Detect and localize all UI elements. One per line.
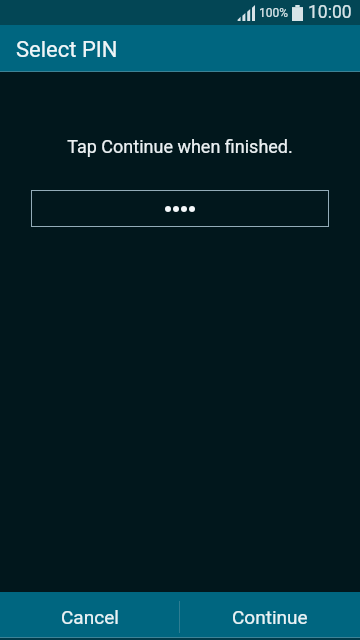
staticText: Select PIN bbox=[16, 37, 118, 63]
staticText: Cancel bbox=[61, 606, 119, 628]
button[interactable]: Continue bbox=[180, 596, 360, 637]
button[interactable]: Cancel bbox=[0, 596, 179, 637]
staticText: Continue bbox=[232, 606, 308, 628]
staticText: Tap Continue when finished. bbox=[67, 136, 293, 157]
button[interactable]: PIN entry field bbox=[31, 190, 329, 227]
staticText: 10:00 bbox=[308, 2, 352, 23]
staticText: 100% bbox=[259, 6, 289, 20]
